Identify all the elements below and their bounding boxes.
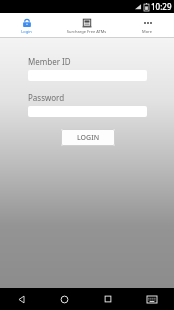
staticText: More xyxy=(120,29,174,34)
staticText: Login xyxy=(0,29,53,34)
button[interactable]: More xyxy=(120,13,174,37)
staticText: LOGIN xyxy=(77,133,100,143)
staticText: Surcharge Free ATMs xyxy=(53,29,120,34)
staticText: Member ID xyxy=(28,56,71,67)
button[interactable]: LOGIN xyxy=(61,129,115,146)
staticText: 10:29 xyxy=(151,1,172,12)
button[interactable]: Login xyxy=(0,13,53,37)
button[interactable]: Surcharge Free ATMs xyxy=(53,13,120,37)
button[interactable]: Home xyxy=(43,288,86,310)
button[interactable]: Recent apps xyxy=(86,288,130,310)
staticText: Password xyxy=(28,92,65,103)
button[interactable]: Keyboard xyxy=(130,288,174,310)
button[interactable]: Back xyxy=(0,288,43,310)
